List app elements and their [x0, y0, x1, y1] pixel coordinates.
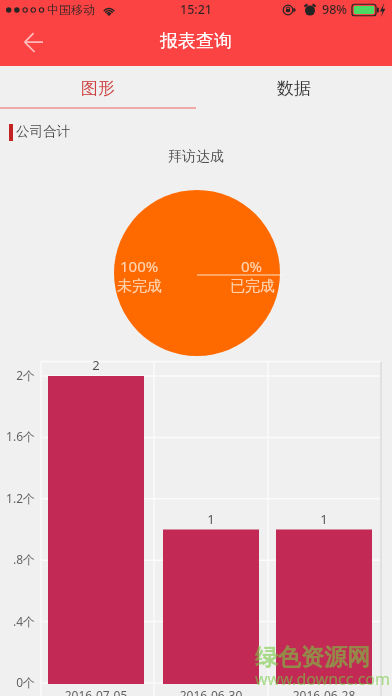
staticText: 1 [304, 510, 344, 528]
staticText: 1.6个 [0, 428, 35, 444]
staticText: 未完成 [117, 277, 162, 296]
staticText: 0% [241, 256, 263, 276]
staticText: 15:21 [180, 1, 213, 18]
staticText: 1 [191, 510, 231, 528]
staticText: 绿色资源网 [255, 643, 370, 672]
staticText: 数据 [277, 78, 311, 99]
staticText: 2 [76, 356, 116, 374]
staticText: 2016-06-28 [274, 687, 374, 696]
staticText: 2个 [0, 367, 35, 383]
staticText: 2016-07-05 [46, 687, 146, 696]
staticText: 2016-06-30 [161, 687, 261, 696]
staticText: 图形 [81, 78, 115, 99]
staticText: www.downcc.com [255, 668, 391, 690]
staticText: .8个 [0, 551, 35, 567]
button[interactable]: Back [10, 22, 56, 64]
button[interactable]: 数据 [196, 68, 392, 109]
staticText: 公司合计 [16, 123, 70, 140]
staticText: 100% [120, 256, 159, 276]
staticText: 中国移动 [47, 2, 95, 17]
staticText: 1.2个 [0, 490, 35, 506]
staticText: 0个 [0, 674, 35, 690]
staticText: 拜访达成 [0, 148, 392, 166]
button[interactable]: 图形 [0, 68, 196, 109]
staticText: 98% [322, 1, 347, 18]
staticText: .4个 [0, 613, 35, 629]
staticText: 报表查询 [160, 30, 232, 53]
staticText: 已完成 [230, 277, 275, 296]
